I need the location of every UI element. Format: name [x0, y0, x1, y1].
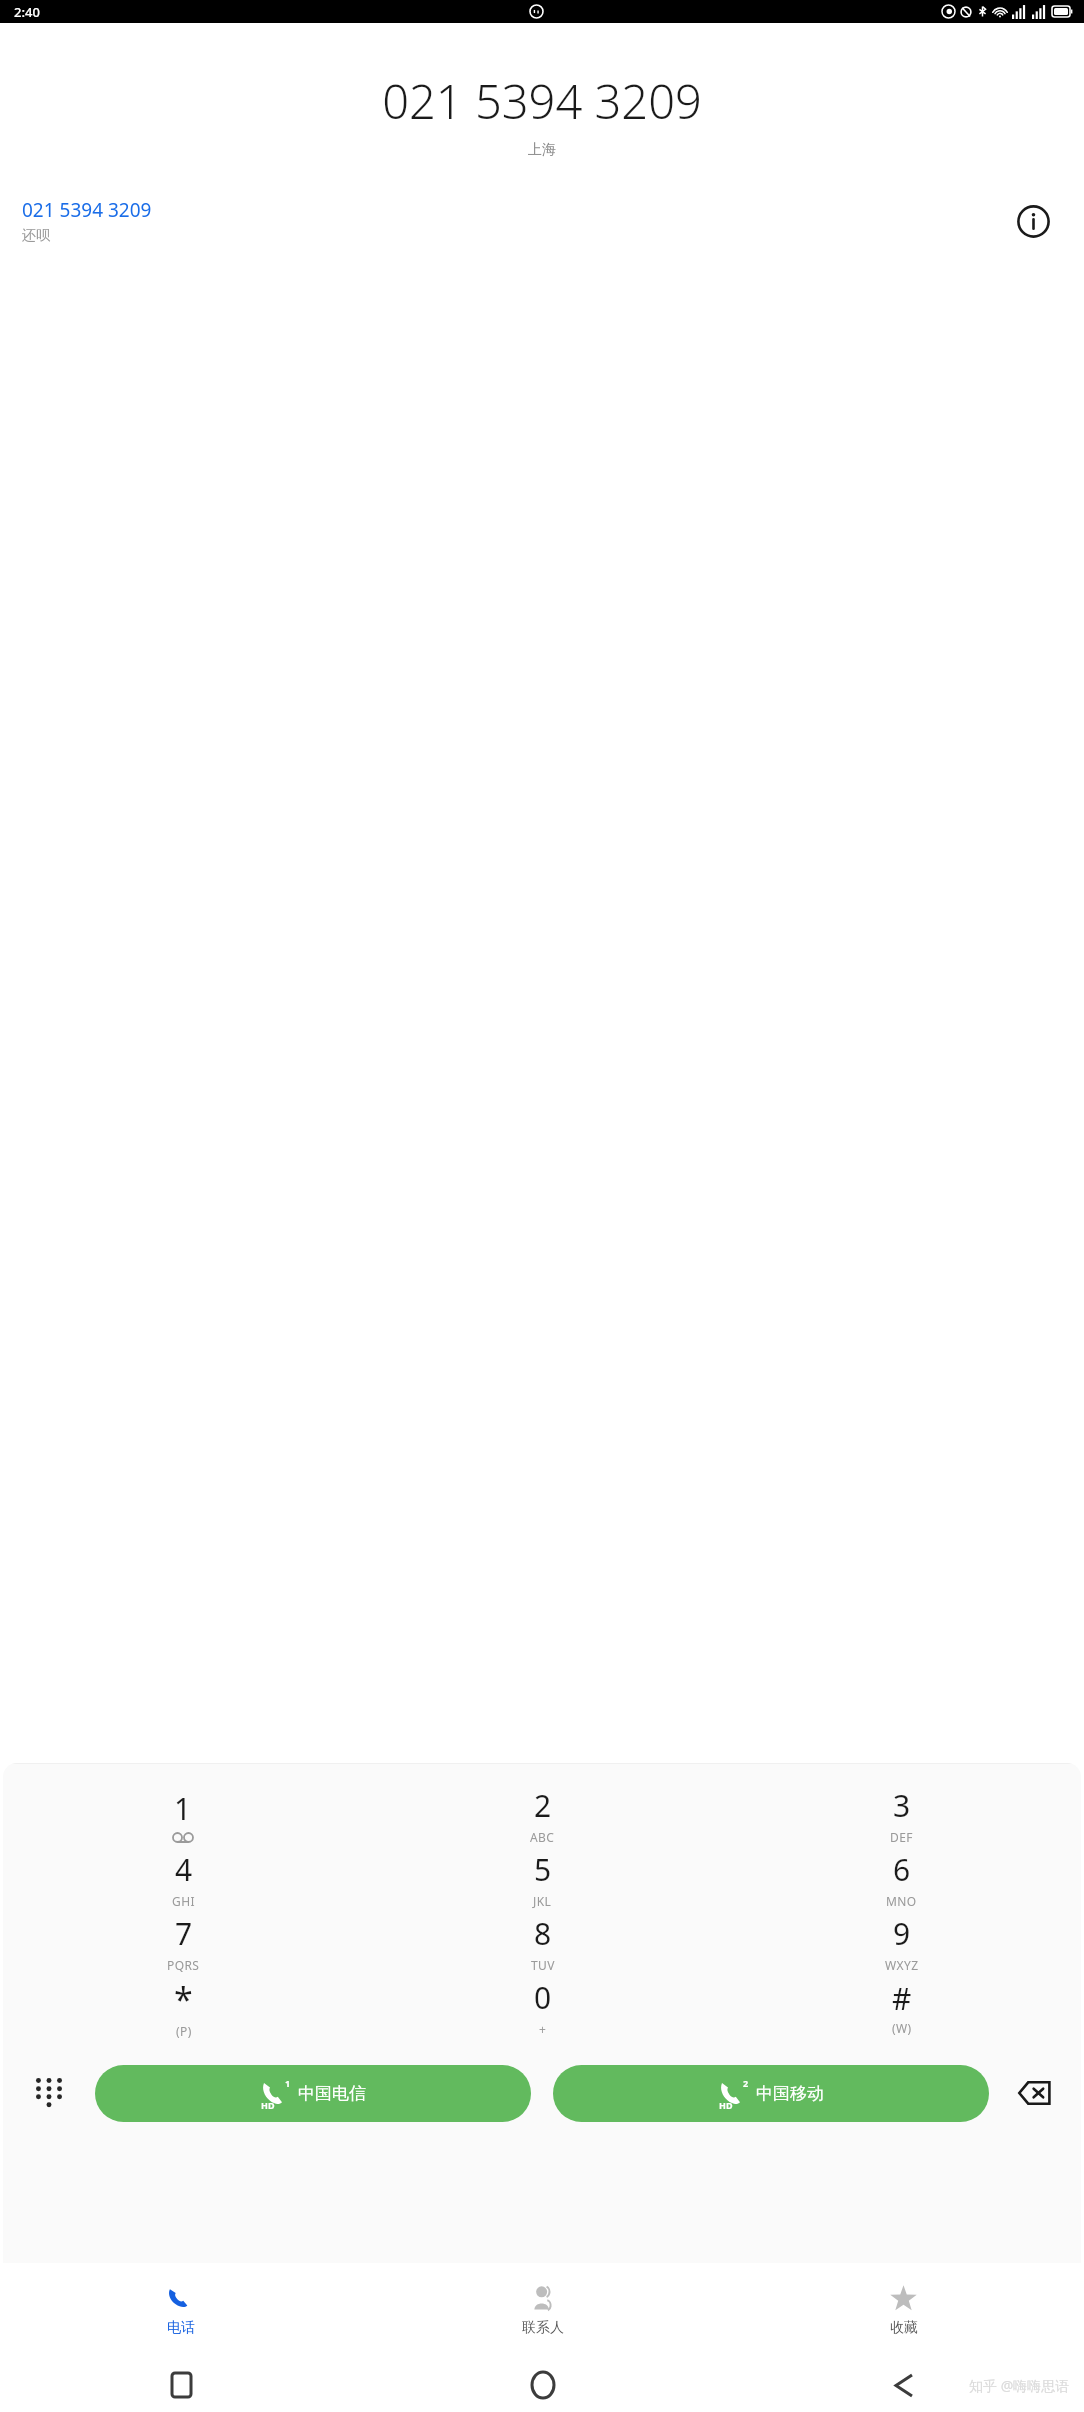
staticText: JKL	[533, 1893, 552, 1909]
staticText: HD	[719, 2099, 733, 2111]
button[interactable]: 0	[363, 1977, 722, 2041]
button[interactable]: Keypad	[3, 2061, 95, 2125]
staticText: 收藏	[890, 2319, 918, 2337]
button[interactable]: 4	[3, 1849, 363, 1913]
staticText: 2:40	[14, 3, 40, 21]
button[interactable]: 2	[553, 2065, 989, 2122]
button[interactable]: 2	[363, 1785, 722, 1849]
staticText: TUV	[531, 1957, 555, 1973]
staticText: 6	[893, 1849, 911, 1890]
staticText: 2	[743, 2077, 749, 2089]
staticText: WXYZ	[885, 1957, 919, 1973]
staticText: ABC	[530, 1829, 555, 1845]
button[interactable]: 收藏	[723, 2263, 1084, 2358]
staticText: DEF	[890, 1829, 913, 1845]
staticText: 联系人	[522, 2319, 564, 2337]
staticText: 1	[285, 2077, 291, 2089]
staticText: +	[539, 2021, 547, 2037]
staticText: HD	[261, 2099, 275, 2111]
staticText: 2	[534, 1785, 552, 1826]
staticText: 4	[175, 1849, 193, 1890]
staticText: 上海	[0, 141, 1084, 159]
staticText: #	[892, 1978, 912, 2019]
button[interactable]: 1	[3, 1785, 363, 1849]
button[interactable]: 9	[722, 1913, 1081, 1977]
staticText: PQRS	[167, 1957, 200, 1973]
staticText: 5	[534, 1849, 552, 1890]
button[interactable]: 5	[363, 1849, 722, 1913]
button[interactable]: Details	[1010, 198, 1056, 244]
button[interactable]: #	[722, 1977, 1081, 2041]
button[interactable]: Backspace	[989, 2061, 1081, 2125]
button[interactable]: 6	[722, 1849, 1081, 1913]
staticText: 中国移动	[756, 2083, 824, 2104]
button[interactable]: 联系人	[362, 2263, 723, 2358]
staticText: 0	[534, 1977, 552, 2018]
staticText: 7	[175, 1913, 193, 1954]
button[interactable]: 3	[722, 1785, 1081, 1849]
button[interactable]: 021 5394 3209	[0, 190, 1084, 252]
staticText: MNO	[886, 1893, 917, 1909]
button[interactable]: 电话	[0, 2263, 362, 2358]
staticText: 1	[174, 1788, 192, 1829]
staticText: 知乎 @嗨嗨思语	[969, 2376, 1070, 2395]
button[interactable]: 8	[363, 1913, 722, 1977]
staticText: GHI	[172, 1893, 195, 1909]
staticText: (W)	[892, 2020, 912, 2036]
staticText: 021 5394 3209	[22, 197, 152, 223]
staticText: 021 5394 3209	[0, 69, 1084, 133]
staticText: 中国电信	[298, 2083, 366, 2104]
button[interactable]: *	[3, 1977, 363, 2041]
staticText: 还呗	[22, 227, 50, 245]
staticText: 3	[893, 1785, 911, 1826]
button[interactable]: 1	[95, 2065, 531, 2122]
staticText: *	[174, 1976, 193, 2022]
staticText: 8	[534, 1913, 552, 1954]
button[interactable]: 7	[3, 1913, 363, 1977]
staticText: 电话	[167, 2319, 195, 2337]
staticText: (P)	[176, 2023, 192, 2039]
staticText: 9	[893, 1913, 911, 1954]
